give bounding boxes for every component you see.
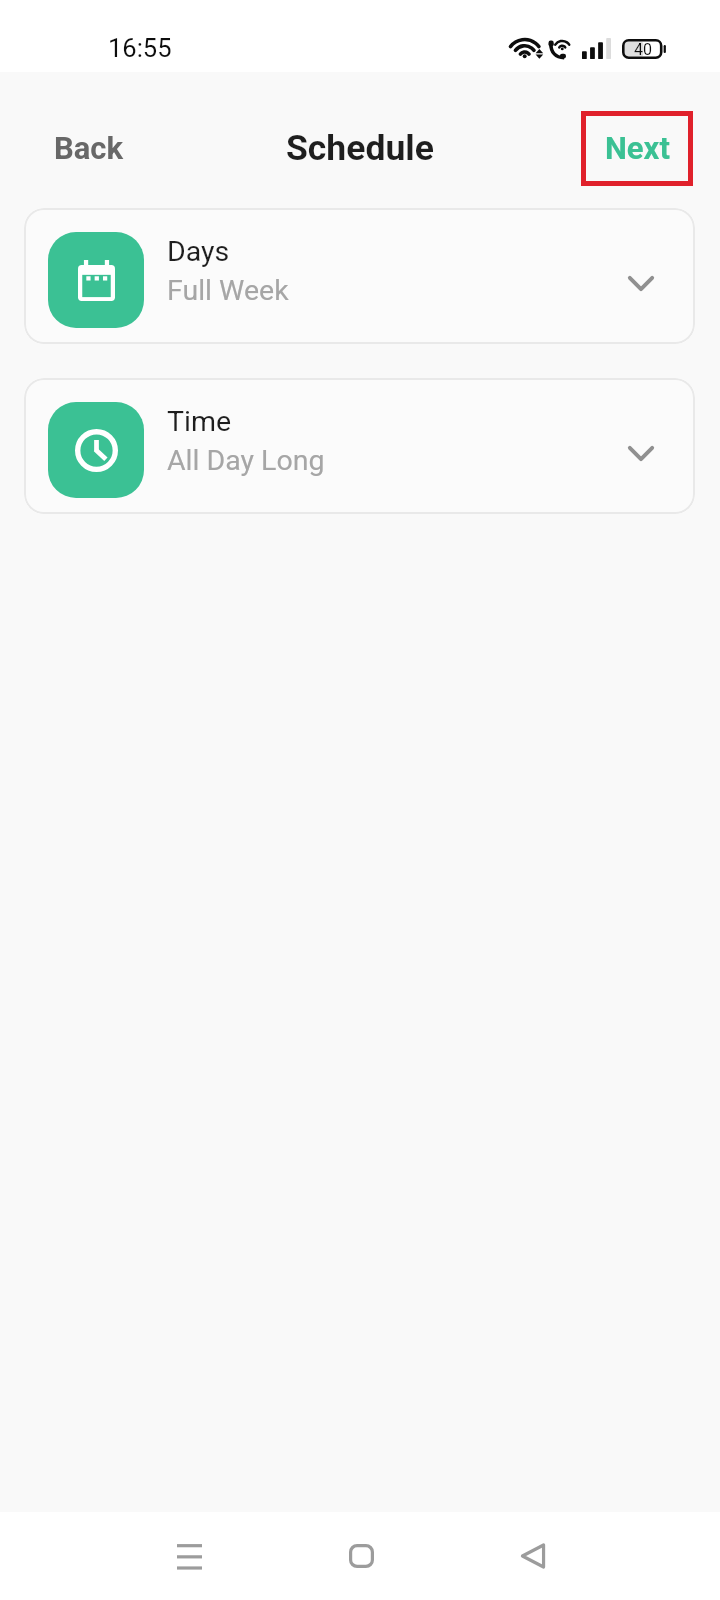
- button[interactable]: Back: [0, 116, 148, 180]
- staticText: All Day Long: [167, 444, 325, 477]
- button[interactable]: Home: [316, 1512, 406, 1600]
- button[interactable]: Back: [488, 1512, 578, 1600]
- staticText: Time: [167, 405, 232, 438]
- staticText: Full Week: [167, 274, 289, 307]
- button[interactable]: Days: [24, 208, 695, 344]
- staticText: Next: [605, 130, 670, 166]
- button[interactable]: Time: [24, 378, 695, 514]
- staticText: 40: [634, 40, 652, 59]
- button[interactable]: Expand: [610, 252, 672, 314]
- staticText: Days: [167, 235, 230, 268]
- staticText: Schedule: [286, 127, 434, 169]
- button[interactable]: Expand: [610, 422, 672, 484]
- staticText: 16:55: [108, 33, 172, 63]
- button[interactable]: Recent apps: [144, 1512, 234, 1600]
- button[interactable]: Next: [581, 111, 693, 186]
